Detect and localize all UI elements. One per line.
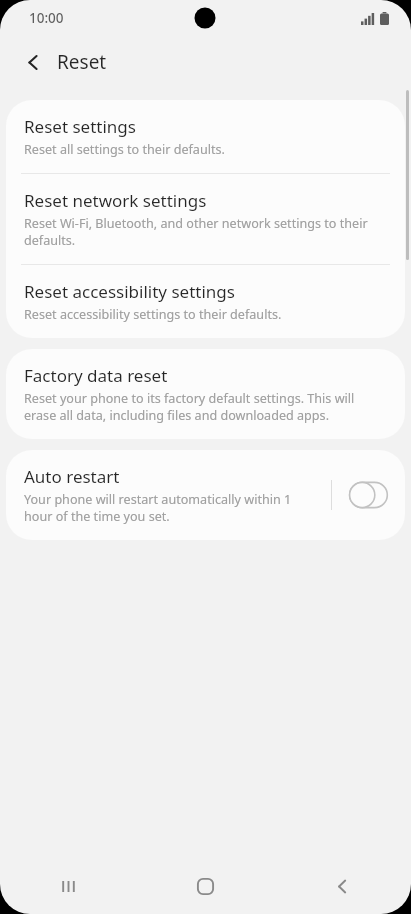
staticText: Reset accessibility settings bbox=[24, 280, 235, 303]
staticText: Reset your phone to its factory default … bbox=[24, 390, 387, 424]
button[interactable]: Auto restart toggle bbox=[345, 480, 391, 510]
staticText: 10:00 bbox=[29, 9, 64, 27]
button[interactable]: Home bbox=[137, 858, 274, 914]
staticText: Reset all settings to their defaults. bbox=[24, 141, 225, 158]
staticText: Reset settings bbox=[24, 115, 136, 138]
staticText: Reset accessibility settings to their de… bbox=[24, 306, 282, 323]
button[interactable]: Reset network settings bbox=[6, 174, 405, 264]
staticText: Reset bbox=[57, 49, 107, 75]
staticText: Reset network settings bbox=[24, 189, 207, 212]
button[interactable]: Factory data reset bbox=[6, 349, 405, 439]
staticText: Factory data reset bbox=[24, 364, 168, 387]
staticText: Reset Wi-Fi, Bluetooth, and other networ… bbox=[24, 215, 387, 249]
staticText: Auto restart bbox=[24, 465, 120, 488]
staticText: Your phone will restart automatically wi… bbox=[24, 491, 321, 525]
button[interactable]: Reset settings bbox=[6, 100, 405, 173]
button[interactable]: Reset accessibility settings bbox=[6, 265, 405, 338]
button[interactable]: Back bbox=[274, 858, 411, 914]
button[interactable]: Recents bbox=[0, 858, 137, 914]
button[interactable]: Auto restart bbox=[6, 450, 405, 540]
button[interactable]: Back bbox=[16, 45, 50, 79]
